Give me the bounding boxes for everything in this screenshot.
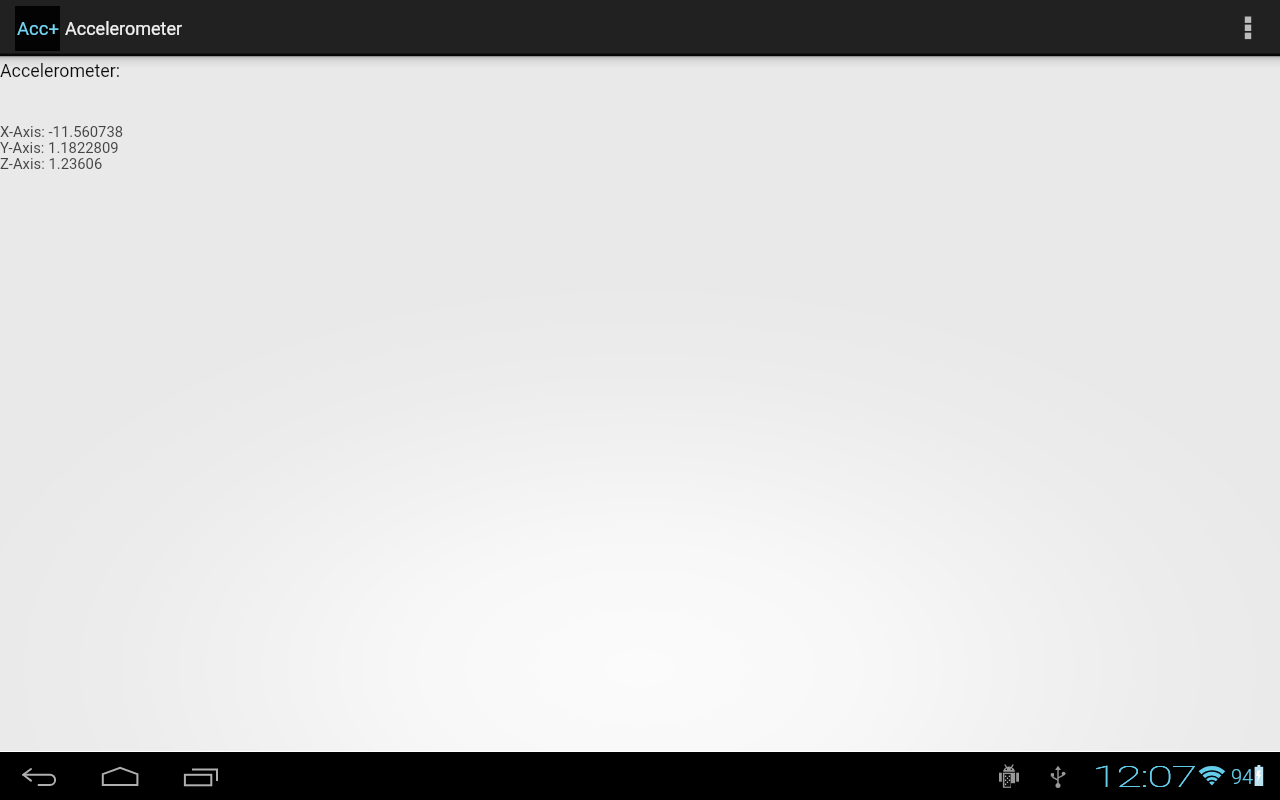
staticText: Accelerometer (65, 18, 183, 39)
staticText: 12:07 (1092, 759, 1197, 794)
staticText: Acc+ (17, 18, 59, 40)
button[interactable]: More options (1228, 0, 1268, 55)
staticText: 94 (1231, 765, 1254, 788)
button[interactable]: Acc+ (0, 0, 195, 55)
button[interactable]: Home (96, 752, 144, 800)
button[interactable]: Recent apps (176, 752, 224, 800)
staticText: Accelerometer: (0, 60, 121, 81)
staticText: X-Axis: -11.560738 Y-Axis: 1.1822809 Z-A… (0, 123, 124, 172)
staticText: 12:07 (1092, 759, 1197, 794)
button[interactable]: System status: 12:07, Wi-Fi connected, b… (990, 752, 1280, 800)
button[interactable]: Back (16, 752, 64, 800)
